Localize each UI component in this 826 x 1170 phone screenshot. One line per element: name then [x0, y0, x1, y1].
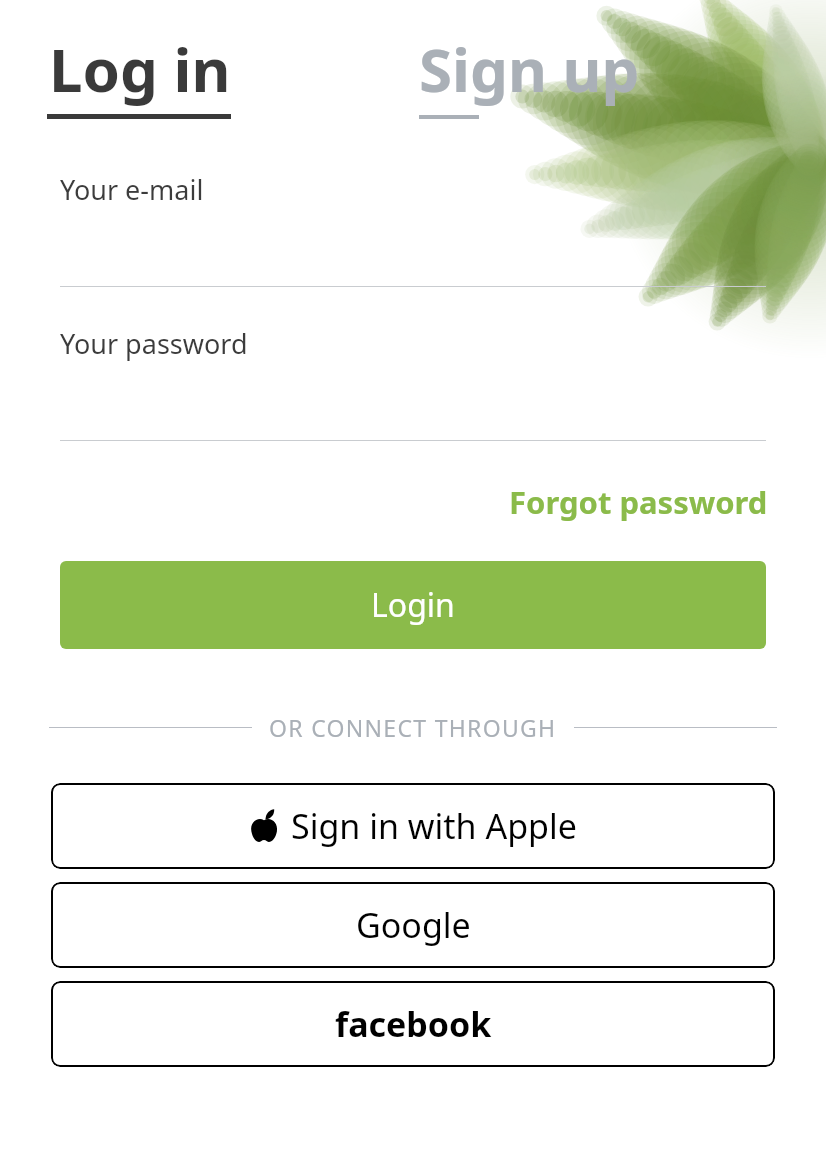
staticText: Sign in with Apple: [291, 803, 577, 849]
button[interactable]: Your e-mail: [60, 171, 766, 287]
staticText: Your password: [60, 325, 248, 362]
button[interactable]: Forgot password: [509, 481, 768, 523]
button[interactable]: Your password: [60, 325, 766, 441]
staticText: Sign up: [419, 28, 640, 110]
staticText: facebook: [335, 1001, 492, 1047]
other: Apple logo: [249, 809, 279, 843]
button[interactable]: Google: [51, 882, 775, 968]
button[interactable]: Log in: [47, 28, 231, 119]
staticText: Your e-mail: [60, 171, 204, 208]
button[interactable]: facebook: [51, 981, 775, 1067]
button[interactable]: Apple logo: [51, 783, 775, 869]
staticText: Login: [371, 583, 455, 627]
staticText: Forgot password: [509, 481, 768, 523]
staticText: Google: [356, 902, 471, 948]
staticText: Log in: [49, 28, 231, 110]
button[interactable]: Sign up: [419, 28, 640, 119]
staticText: OR CONNECT THROUGH: [269, 712, 557, 743]
button[interactable]: Login: [60, 561, 766, 649]
